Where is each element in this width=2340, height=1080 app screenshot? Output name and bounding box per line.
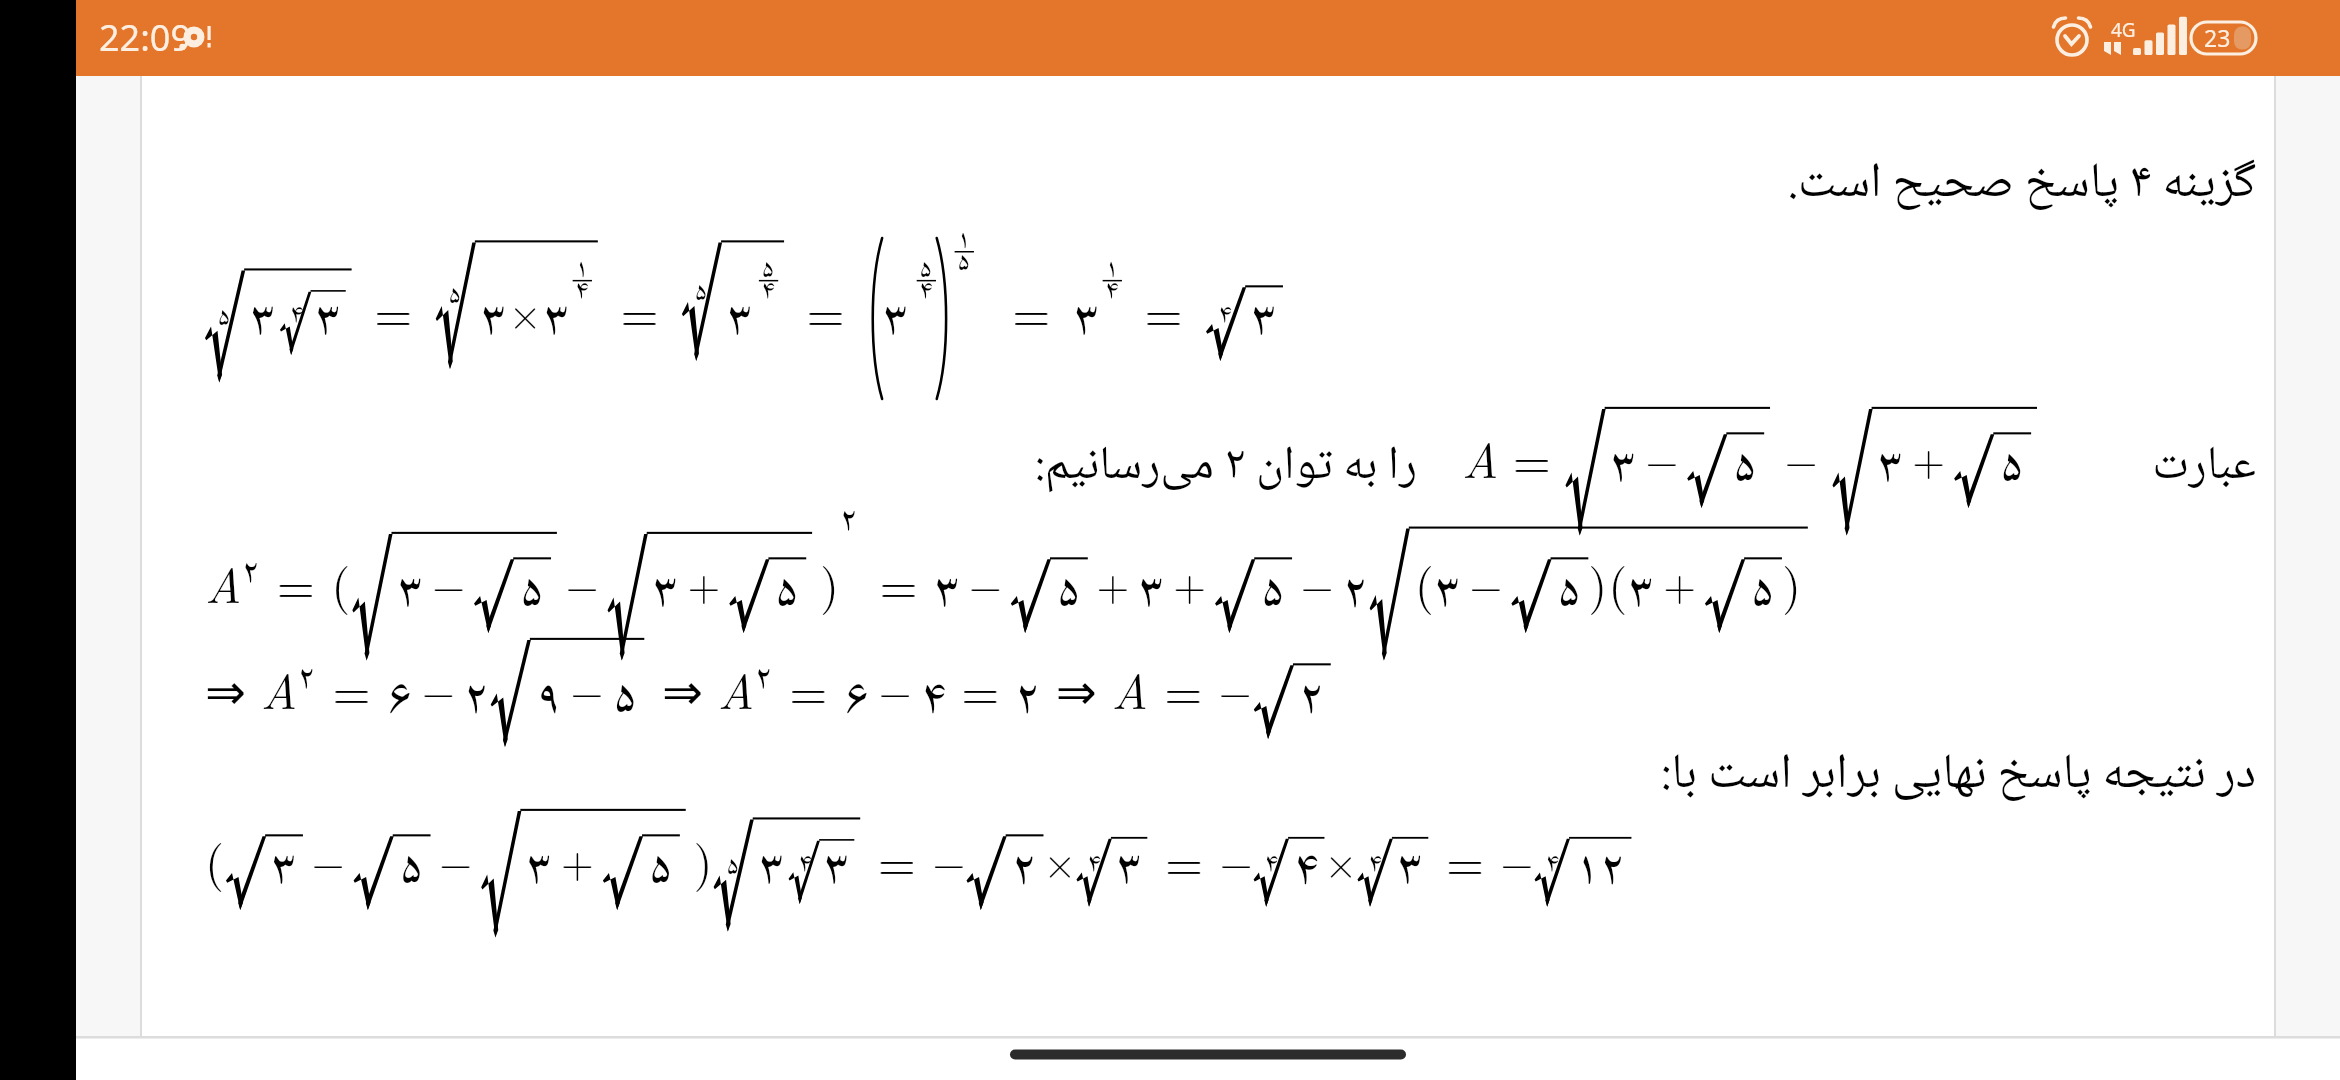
- button[interactable]: Solution page: [76, 76, 2340, 1036]
- button[interactable]: Status bar: [76, 0, 2340, 76]
- button[interactable]: Home: [76, 1036, 2340, 1080]
